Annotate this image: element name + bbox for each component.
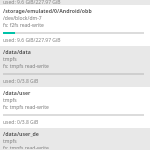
staticText: used: 9.6 GiB/227.97 GiB	[3, 0, 61, 4]
button[interactable]: /storage/emulated/0/Android/obb	[0, 5, 150, 46]
staticText: /data/user_de	[3, 130, 39, 137]
staticText: /storage/emulated/0/Android/obb	[3, 7, 92, 14]
staticText: used: 9.6 GiB/227.97 GiB	[3, 37, 61, 44]
staticText: tmpfs	[3, 56, 17, 63]
button[interactable]: used: 9.6 GiB/227.97 GiB	[0, 0, 150, 5]
staticText: /data/data	[3, 48, 31, 55]
staticText: fs: tmpfs read-write	[3, 63, 49, 70]
staticText: /data/user	[3, 89, 31, 96]
staticText: tmpfs	[3, 138, 17, 145]
button[interactable]: /data/data	[0, 46, 150, 87]
button[interactable]: /data/user_de	[0, 128, 150, 150]
staticText: fs: f2fs read-write	[3, 22, 44, 29]
staticText: /dev/block/dm-7	[3, 15, 42, 22]
staticText: tmpfs	[3, 97, 17, 104]
staticText: fs: tmpfs read-write	[3, 104, 49, 111]
staticText: used: 0/3.8 GiB	[3, 119, 39, 126]
button[interactable]: /data/user	[0, 87, 150, 128]
staticText: used: 0/3.8 GiB	[3, 78, 39, 85]
staticText: fs: tmpfs read-write	[3, 145, 49, 149]
